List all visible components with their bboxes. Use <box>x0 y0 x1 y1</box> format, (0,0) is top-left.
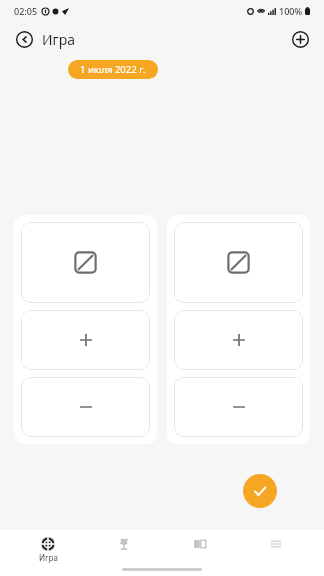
button[interactable]: Decrease <box>21 377 150 437</box>
button[interactable]: Tab <box>172 535 228 553</box>
button[interactable]: Add <box>286 25 314 53</box>
button[interactable]: Add photo <box>21 222 150 303</box>
staticText: Игра <box>42 30 76 49</box>
button[interactable]: Increase <box>21 310 150 370</box>
staticText: Игра <box>39 552 58 563</box>
button[interactable]: 1 июля 2022 г. <box>68 60 158 79</box>
button[interactable]: Back <box>10 25 38 53</box>
button[interactable]: Confirm <box>243 474 277 508</box>
staticText: 100% <box>279 5 303 17</box>
button[interactable]: Add photo <box>174 222 303 303</box>
staticText: 1 июля 2022 г. <box>80 63 146 76</box>
button[interactable]: Tab <box>248 535 304 553</box>
button[interactable]: Increase <box>174 310 303 370</box>
button[interactable]: Игра <box>20 535 76 565</box>
staticText: 02:05 <box>14 5 38 17</box>
button[interactable]: Decrease <box>174 377 303 437</box>
button[interactable]: Tab <box>96 535 152 553</box>
